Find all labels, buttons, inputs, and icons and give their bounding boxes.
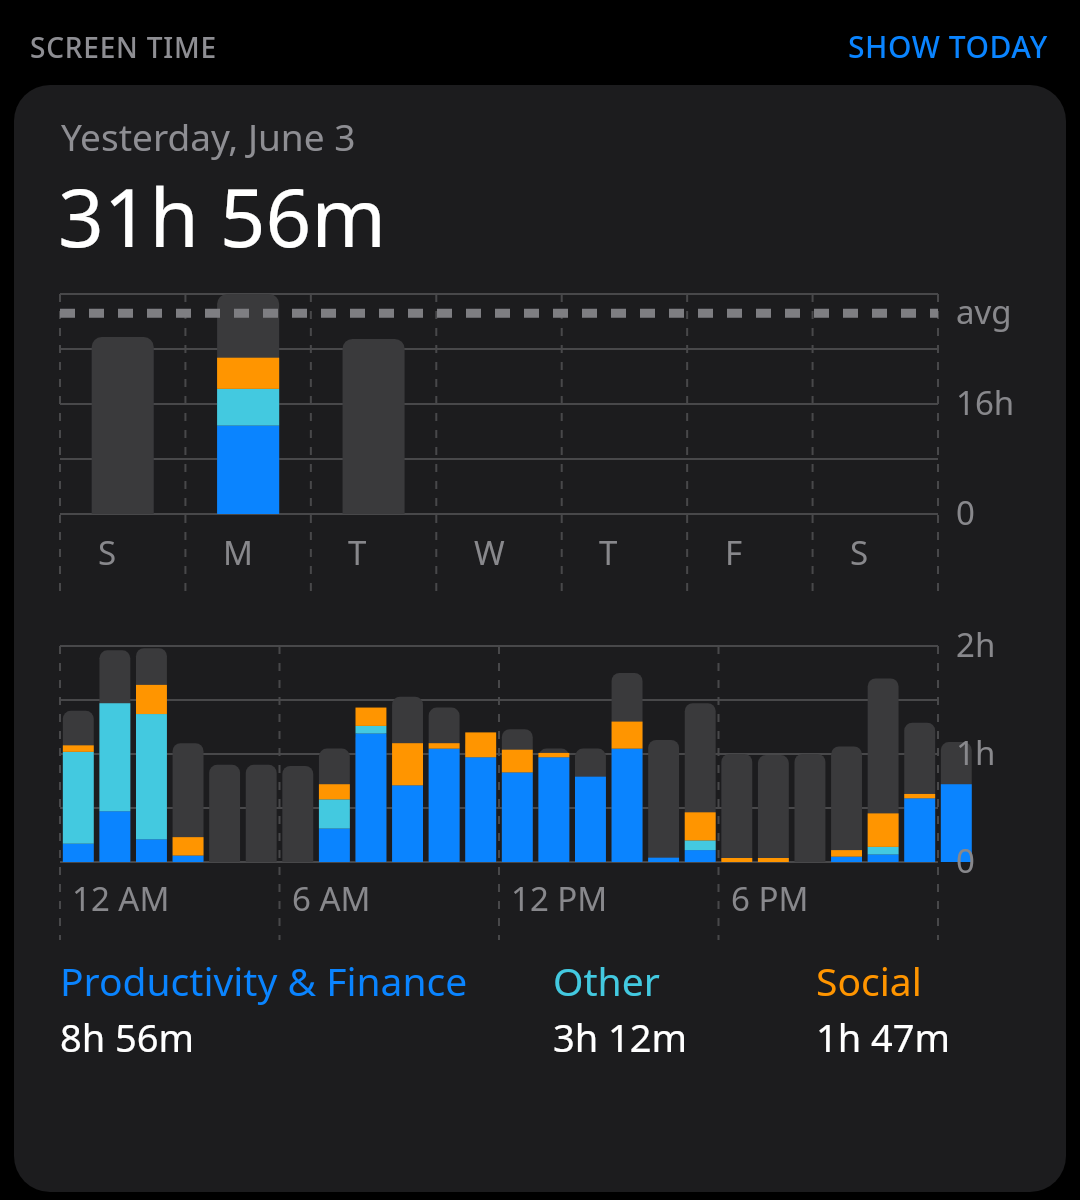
staticText: SHOW TODAY <box>848 26 1048 67</box>
staticText: 16h <box>956 380 1015 425</box>
staticText: 1h 47m <box>816 1011 951 1063</box>
other: Weekly screen time chart <box>14 286 1066 592</box>
staticText: T <box>348 530 367 575</box>
button[interactable]: Yesterday, June 3 <box>14 85 1066 1192</box>
staticText: Social <box>816 954 922 1007</box>
staticText: Productivity & Finance <box>60 954 468 1007</box>
staticText: SCREEN TIME <box>30 28 217 66</box>
staticText: Yesterday, June 3 <box>61 111 356 161</box>
staticText: avg <box>956 289 1012 334</box>
staticText: 1h <box>956 730 996 775</box>
staticText: M <box>223 530 253 575</box>
other: Hourly screen time chart <box>14 640 1066 940</box>
staticText: 0 <box>956 490 975 535</box>
staticText: Other <box>553 954 660 1007</box>
staticText: 31h 56m <box>58 161 387 270</box>
staticText: 6 PM <box>731 876 809 921</box>
staticText: 8h 56m <box>60 1011 195 1063</box>
staticText: 3h 12m <box>553 1011 688 1063</box>
button[interactable]: SHOW TODAY <box>846 22 1050 71</box>
staticText: 12 AM <box>72 876 170 921</box>
staticText: F <box>725 530 743 575</box>
staticText: 12 PM <box>511 876 608 921</box>
button[interactable]: Social <box>816 954 1046 1063</box>
staticText: 0 <box>956 838 975 883</box>
staticText: 2h <box>956 622 996 667</box>
button[interactable]: Other <box>553 954 816 1063</box>
button[interactable]: Productivity & Finance <box>60 954 553 1063</box>
staticText: T <box>599 530 618 575</box>
staticText: W <box>474 530 505 575</box>
staticText: 6 AM <box>292 876 371 921</box>
staticText: S <box>98 530 117 575</box>
staticText: S <box>850 530 869 575</box>
